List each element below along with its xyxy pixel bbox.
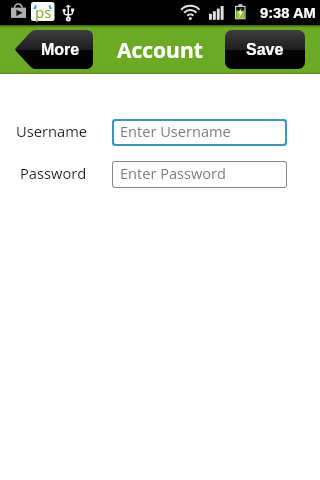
staticText: Enter Username <box>120 121 231 141</box>
staticText: Username <box>16 121 87 141</box>
staticText: More <box>41 41 80 59</box>
button[interactable]: Enter Password <box>113 162 286 187</box>
button[interactable]: Enter Username <box>114 121 285 144</box>
button[interactable]: Save <box>225 30 305 69</box>
staticText: 9:38 AM <box>260 5 316 21</box>
staticText: Save <box>246 41 284 59</box>
staticText: ps <box>35 2 52 22</box>
staticText: Enter Password <box>120 163 226 183</box>
staticText: Account <box>117 36 203 65</box>
button[interactable]: More <box>14 30 93 69</box>
staticText: Password <box>20 163 87 183</box>
